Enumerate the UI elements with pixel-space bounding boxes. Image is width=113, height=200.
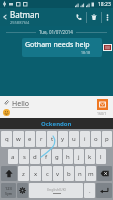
button[interactable]: b: [64, 166, 74, 181]
staticText: b: [67, 170, 71, 178]
button[interactable]: n: [75, 166, 85, 181]
button[interactable]: f: [41, 149, 51, 164]
button[interactable]: j: [74, 149, 84, 164]
button[interactable]: z: [18, 166, 29, 181]
staticText: o: [94, 135, 98, 143]
staticText: Ockendon: [41, 120, 72, 128]
staticText: g: [55, 153, 59, 161]
button[interactable]: Backspace: [97, 166, 112, 181]
staticText: 18:23: [98, 1, 111, 8]
button[interactable]: Space: [29, 183, 83, 198]
staticText: 123: [5, 186, 12, 191]
button[interactable]: q: [1, 131, 12, 147]
button[interactable]: o: [91, 131, 101, 147]
staticText: Gotham needs help: [25, 40, 90, 50]
staticText: j: [78, 153, 80, 161]
staticText: z: [22, 170, 25, 178]
button[interactable]: Ockendon: [0, 118, 113, 129]
button[interactable]: s: [19, 149, 29, 164]
button[interactable]: Attachment thumbnail: [103, 44, 112, 51]
staticText: Batman: [10, 9, 40, 20]
button[interactable]: u: [69, 131, 79, 147]
button[interactable]: More options: [102, 8, 113, 26]
button[interactable]: p: [102, 131, 112, 147]
button[interactable]: Back: [0, 8, 10, 26]
button[interactable]: e: [25, 131, 35, 147]
button[interactable]: Attach: [1, 97, 11, 107]
button[interactable]: Emoji: [1, 107, 11, 117]
staticText: d: [33, 153, 37, 161]
button[interactable]: 123: [1, 183, 16, 198]
button[interactable]: Gotham needs help: [22, 38, 102, 57]
button[interactable]: r: [36, 131, 46, 147]
button[interactable]: Call: [72, 8, 86, 26]
button[interactable]: v: [53, 166, 63, 181]
staticText: 160/1: [97, 111, 107, 116]
staticText: English(UK): [47, 187, 66, 192]
staticText: n: [78, 170, 82, 178]
button[interactable]: Settings: [17, 183, 28, 198]
button[interactable]: c: [42, 166, 52, 181]
staticText: Tue, 01/07/2014: [39, 29, 73, 35]
button[interactable]: x: [30, 166, 41, 181]
staticText: q: [5, 135, 9, 143]
staticText: k: [88, 153, 92, 161]
staticText: p: [105, 135, 109, 143]
staticText: i: [84, 135, 86, 143]
staticText: y: [61, 135, 65, 143]
button[interactable]: d: [30, 149, 40, 164]
staticText: t: [51, 135, 54, 143]
staticText: 18:18: [81, 50, 90, 55]
staticText: w: [16, 135, 21, 143]
button[interactable]: Shift: [1, 166, 17, 181]
button[interactable]: h: [63, 149, 73, 164]
button[interactable]: m: [86, 166, 96, 181]
button[interactable]: Send: [97, 99, 108, 110]
staticText: a: [11, 153, 15, 161]
staticText: v: [56, 170, 60, 178]
button[interactable]: i: [80, 131, 90, 147]
button[interactable]: Delete: [87, 8, 101, 26]
staticText: .: [89, 187, 91, 195]
button[interactable]: .: [84, 183, 95, 198]
staticText: f: [45, 153, 48, 161]
staticText: Hello: [12, 99, 29, 109]
staticText: m: [88, 170, 94, 178]
staticText: l: [100, 153, 102, 161]
staticText: r: [40, 135, 43, 143]
staticText: x: [34, 170, 38, 178]
button[interactable]: g: [52, 149, 62, 164]
button[interactable]: a: [8, 149, 18, 164]
button[interactable]: l: [96, 149, 106, 164]
button[interactable]: t: [47, 131, 57, 147]
staticText: c: [46, 170, 49, 178]
button[interactable]: y: [58, 131, 68, 147]
button[interactable]: Hello: [12, 96, 91, 118]
staticText: 2558876l4: [10, 20, 30, 25]
button[interactable]: k: [85, 149, 95, 164]
staticText: s: [23, 153, 26, 161]
staticText: u: [72, 135, 76, 143]
button[interactable]: Enter: [96, 183, 112, 198]
staticText: h: [66, 153, 70, 161]
staticText: e: [28, 135, 32, 143]
staticText: Sym: [5, 191, 12, 196]
button[interactable]: w: [13, 131, 24, 147]
